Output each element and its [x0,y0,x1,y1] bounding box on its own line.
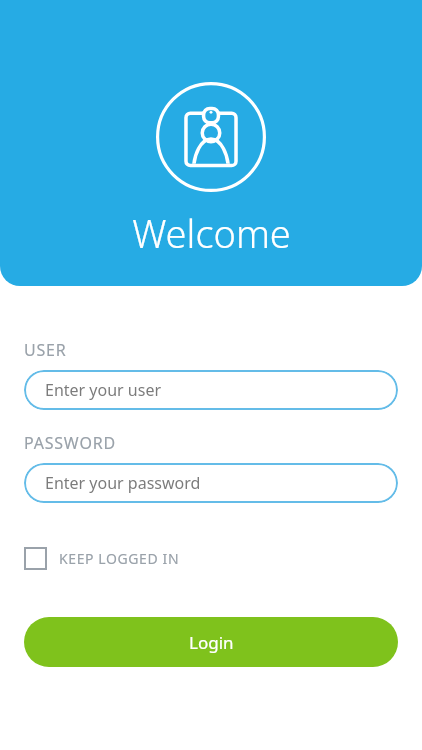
staticText: Welcome [132,207,291,259]
other: User badge [156,82,266,192]
staticText: Enter your user [45,379,162,401]
staticText: Login [189,631,234,654]
button[interactable]: Enter your password [24,463,398,503]
staticText: KEEP LOGGED IN [59,549,180,568]
button[interactable]: Login [24,617,398,667]
staticText: PASSWORD [24,432,116,454]
staticText: Enter your password [45,472,201,494]
button[interactable]: Enter your user [24,370,398,410]
staticText: USER [24,339,67,361]
button[interactable]: KEEP LOGGED IN [24,545,180,572]
